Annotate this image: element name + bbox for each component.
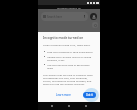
button[interactable]: Incognito account	[90, 13, 97, 20]
staticText: Learn more	[56, 93, 71, 97]
button[interactable]: Back	[49, 103, 55, 109]
staticText: Update your Location History or shared l…	[47, 55, 96, 61]
button[interactable]: Voice search	[83, 15, 86, 18]
staticText: Got it	[86, 93, 93, 97]
staticText: Search here	[47, 15, 62, 19]
staticText: Save your browsing or send notifications	[47, 50, 93, 53]
staticText: Incognito mode is on	[57, 6, 81, 9]
button[interactable]: Recents	[83, 103, 89, 109]
staticText: Incognito mode turned on	[43, 36, 84, 40]
button[interactable]: Map layers	[92, 22, 98, 28]
button[interactable]: Learn more	[55, 92, 72, 98]
staticText: Use your personal data to personalise Ma…	[47, 63, 96, 69]
staticText: This activity may be used or saved by ap…	[43, 73, 96, 85]
button[interactable]: Home	[66, 103, 72, 109]
staticText: When Incognito mode is on, Maps won't	[43, 43, 91, 46]
button[interactable]: Got it	[83, 92, 96, 98]
button[interactable]: Search here	[41, 12, 88, 21]
